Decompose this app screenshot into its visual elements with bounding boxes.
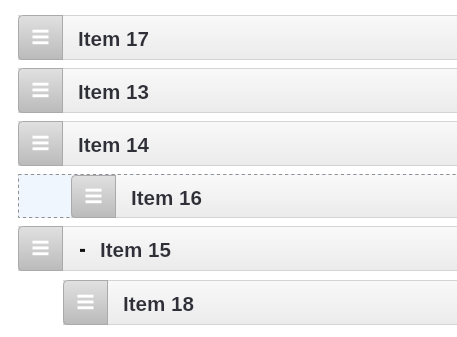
button[interactable]: Drag handle: [63, 280, 108, 325]
button[interactable]: Drag handle: [18, 121, 63, 166]
button[interactable]: Drag handle: [18, 68, 63, 113]
staticText: Item 13: [78, 80, 149, 103]
button[interactable]: Drag handle: [18, 121, 457, 166]
button[interactable]: Drag handle: [18, 15, 457, 60]
button[interactable]: Drag handle: [18, 68, 457, 113]
button[interactable]: Drag handle: [63, 280, 457, 325]
staticText: Item 18: [123, 292, 194, 315]
staticText: Item 17: [78, 27, 149, 50]
button[interactable]: Drag handle: [18, 15, 63, 60]
button[interactable]: Drag handle: [18, 226, 457, 271]
staticText: Item 16: [131, 186, 202, 209]
button[interactable]: Drag handle: [18, 226, 63, 271]
button[interactable]: Drag handle: [71, 175, 457, 218]
button[interactable]: Drag handle: [71, 175, 116, 218]
staticText: Item 14: [78, 133, 149, 156]
staticText: Item 15: [100, 238, 171, 261]
